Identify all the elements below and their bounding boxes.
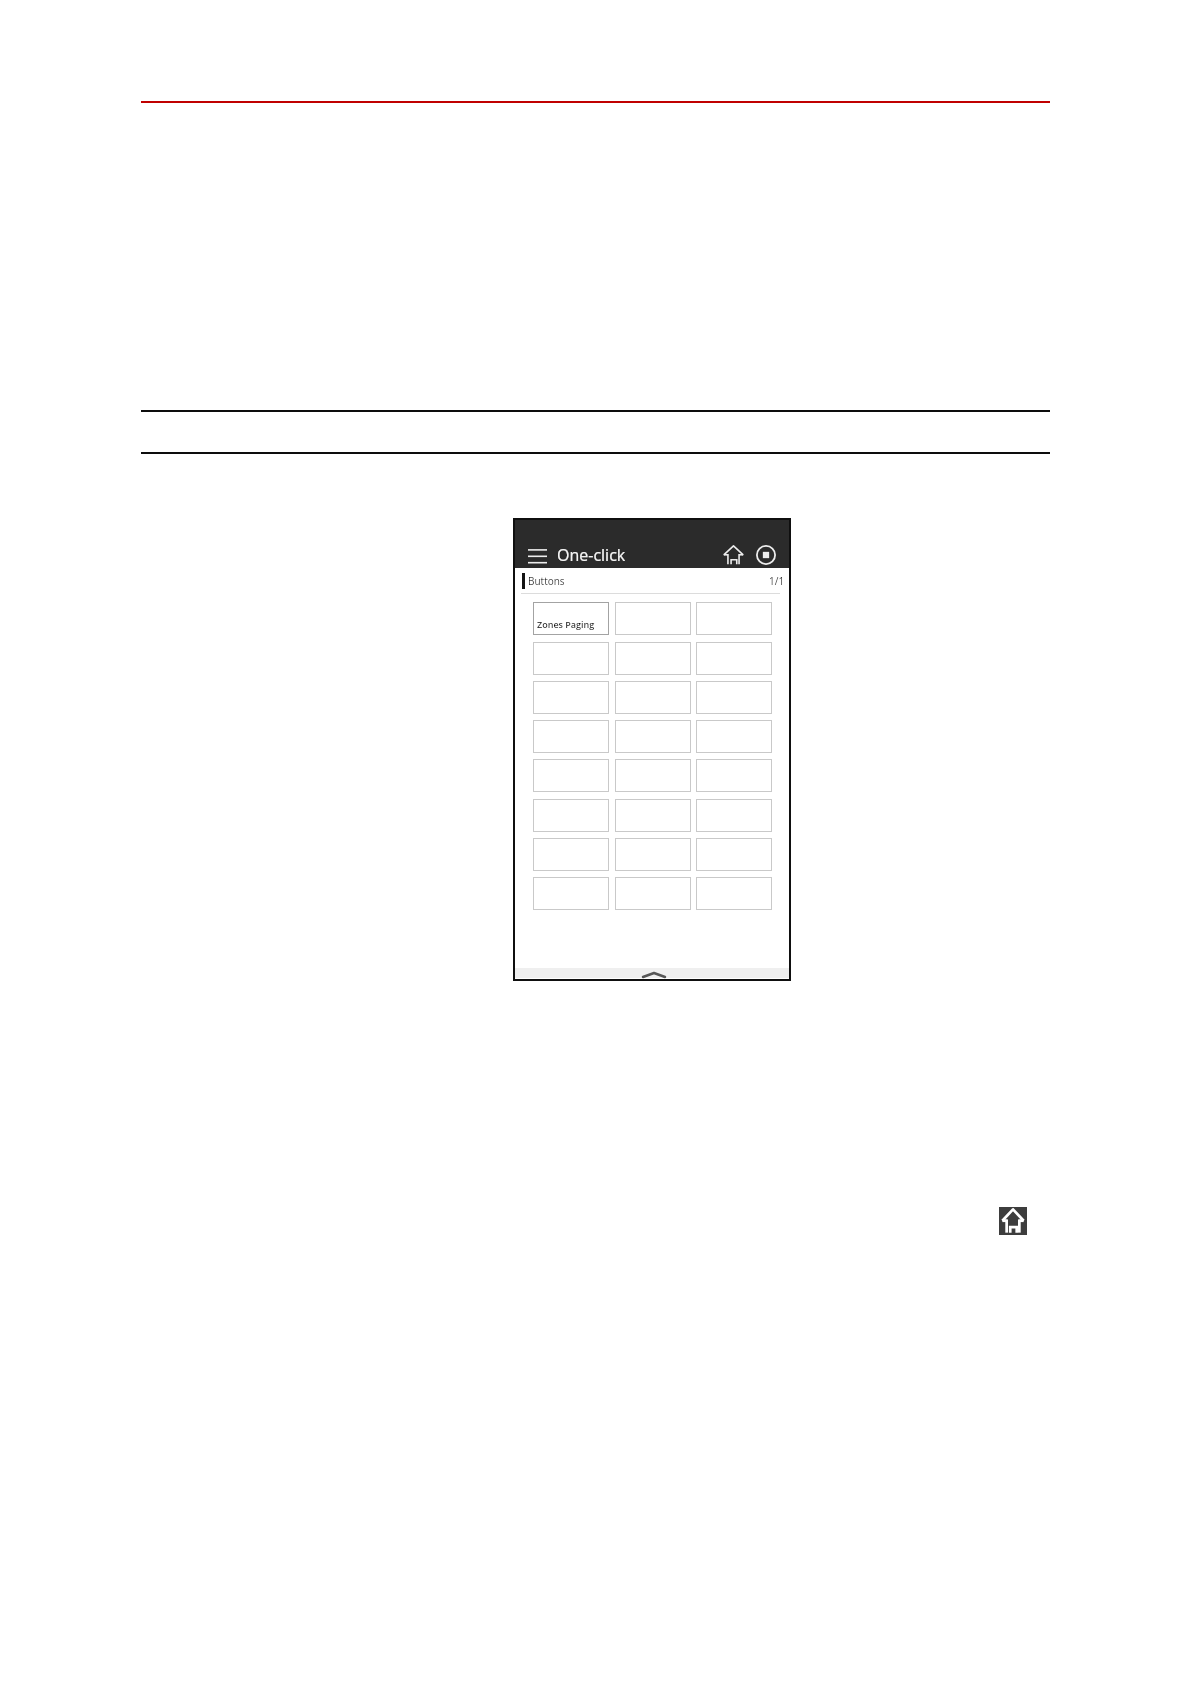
button[interactable] <box>615 838 691 871</box>
button[interactable] <box>615 642 691 675</box>
button[interactable] <box>615 681 691 714</box>
button[interactable] <box>696 759 772 792</box>
button[interactable]: Zones Paging <box>533 602 609 635</box>
button[interactable] <box>696 642 772 675</box>
button[interactable] <box>615 799 691 832</box>
button[interactable] <box>533 877 609 910</box>
button[interactable] <box>533 642 609 675</box>
button[interactable] <box>696 838 772 871</box>
button[interactable] <box>696 681 772 714</box>
button[interactable] <box>696 799 772 832</box>
button[interactable] <box>696 720 772 753</box>
button[interactable]: Open navigation menu <box>522 545 552 567</box>
button[interactable] <box>533 720 609 753</box>
staticText: Zones Paging <box>537 618 595 630</box>
button[interactable] <box>615 877 691 910</box>
button[interactable]: Home <box>723 545 744 565</box>
button[interactable] <box>615 759 691 792</box>
button[interactable] <box>533 759 609 792</box>
button[interactable] <box>533 681 609 714</box>
button[interactable] <box>533 838 609 871</box>
button[interactable]: Stop <box>756 545 776 565</box>
button[interactable] <box>615 602 691 635</box>
staticText: One-click <box>557 544 626 566</box>
button[interactable] <box>696 602 772 635</box>
button[interactable]: Back <box>637 970 671 980</box>
button[interactable] <box>696 877 772 910</box>
staticText: 1/1 <box>769 574 785 588</box>
staticText: Buttons <box>528 574 565 588</box>
button[interactable] <box>533 799 609 832</box>
button[interactable]: Home <box>999 1207 1027 1235</box>
button[interactable] <box>615 720 691 753</box>
